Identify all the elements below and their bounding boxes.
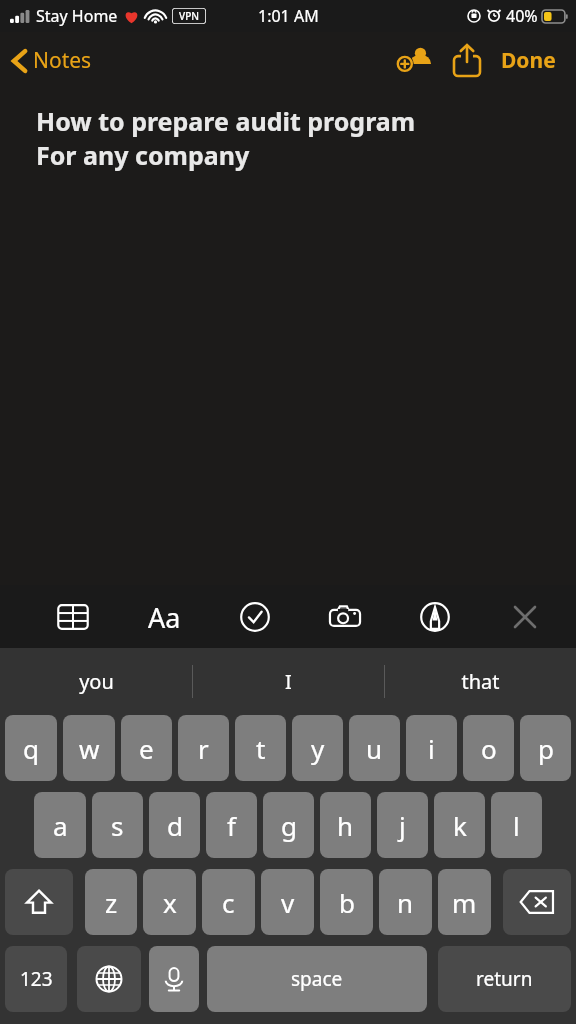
button[interactable]: u [349, 715, 400, 781]
staticText: n [397, 885, 414, 920]
button[interactable]: Backspace [503, 869, 571, 935]
staticText: l [513, 808, 520, 843]
staticText: i [428, 731, 435, 766]
button[interactable]: Camera [316, 588, 374, 646]
button[interactable]: v [261, 869, 314, 935]
staticText: p [538, 731, 554, 766]
staticText: Notes [33, 46, 92, 75]
staticText: y [311, 731, 325, 766]
button[interactable]: 123 [5, 946, 67, 1012]
staticText: 40% [506, 5, 538, 27]
staticText: How to prepare audit program [36, 104, 416, 138]
button[interactable]: h [320, 792, 371, 858]
staticText: k [453, 808, 467, 843]
staticText: Stay Home [36, 5, 118, 27]
staticText: q [23, 731, 39, 766]
button[interactable]: q [5, 715, 57, 781]
staticText: 1:01 AM [258, 5, 319, 27]
button[interactable]: l [491, 792, 542, 858]
staticText: v [281, 885, 295, 920]
staticText: c [222, 885, 235, 920]
button[interactable]: z [85, 869, 137, 935]
button[interactable]: you [0, 648, 192, 715]
staticText: x [163, 885, 177, 920]
button[interactable]: that [385, 648, 576, 715]
button[interactable]: t [235, 715, 286, 781]
staticText: you [79, 668, 114, 695]
button[interactable]: i [406, 715, 457, 781]
button[interactable]: x [143, 869, 196, 935]
staticText: r [198, 731, 209, 766]
button[interactable]: Close keyboard [496, 588, 554, 646]
button[interactable]: Shift [5, 869, 73, 935]
button[interactable]: Markup [406, 588, 464, 646]
button[interactable]: k [434, 792, 485, 858]
staticText: j [399, 808, 406, 843]
button[interactable]: Dictation [149, 946, 199, 1012]
staticText: f [227, 808, 236, 843]
button[interactable]: Done [493, 38, 576, 83]
button[interactable]: How to prepare audit program [0, 88, 576, 585]
button[interactable]: Aa [135, 588, 193, 646]
button[interactable]: a [34, 792, 86, 858]
staticText: e [139, 731, 154, 766]
staticText: z [105, 885, 118, 920]
staticText: h [337, 808, 354, 843]
button[interactable]: Checklist [226, 588, 284, 646]
staticText: that [461, 668, 500, 695]
button[interactable]: Notes [0, 40, 104, 81]
button[interactable]: I [193, 648, 384, 715]
staticText: I [285, 668, 292, 695]
staticText: space [291, 966, 343, 992]
staticText: Aa [148, 599, 181, 636]
button[interactable]: b [320, 869, 373, 935]
button[interactable]: return [438, 946, 571, 1012]
button[interactable]: f [206, 792, 257, 858]
button[interactable]: m [438, 869, 491, 935]
staticText: u [366, 731, 383, 766]
button[interactable]: s [92, 792, 143, 858]
button[interactable]: c [202, 869, 255, 935]
button[interactable]: w [63, 715, 115, 781]
staticText: g [281, 808, 297, 843]
button[interactable]: Table [44, 588, 102, 646]
button[interactable]: y [292, 715, 343, 781]
staticText: For any company [36, 138, 250, 172]
staticText: a [53, 808, 68, 843]
button[interactable]: space [207, 946, 427, 1012]
button[interactable]: d [149, 792, 200, 858]
staticText: m [452, 885, 477, 920]
button[interactable]: g [263, 792, 314, 858]
staticText: w [79, 731, 100, 766]
staticText: s [111, 808, 124, 843]
staticText: t [256, 731, 266, 766]
button[interactable]: p [520, 715, 571, 781]
staticText: return [476, 966, 533, 992]
staticText: Done [501, 46, 556, 75]
button[interactable]: j [377, 792, 428, 858]
button[interactable]: r [178, 715, 229, 781]
button[interactable]: Add people [389, 34, 441, 86]
button[interactable]: e [121, 715, 172, 781]
button[interactable]: o [463, 715, 514, 781]
button[interactable]: Share [441, 34, 493, 86]
button[interactable]: n [379, 869, 432, 935]
staticText: o [481, 731, 497, 766]
button[interactable]: Change keyboard [77, 946, 141, 1012]
staticText: d [167, 808, 183, 843]
staticText: VPN [179, 9, 200, 23]
staticText: 123 [20, 966, 53, 992]
staticText: b [339, 885, 355, 920]
